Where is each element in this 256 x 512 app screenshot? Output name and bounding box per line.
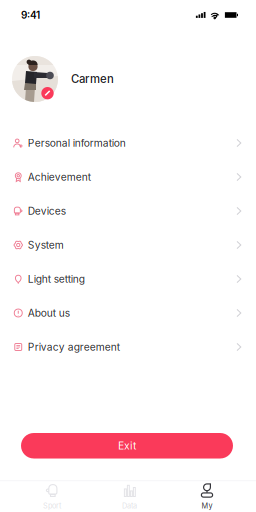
button[interactable]: Achievement bbox=[0, 160, 256, 194]
button[interactable]: About us bbox=[0, 296, 256, 330]
staticText: About us bbox=[28, 307, 70, 319]
button[interactable]: Personal information bbox=[0, 126, 256, 160]
button[interactable]: System bbox=[0, 228, 256, 262]
button[interactable]: Privacy agreement bbox=[0, 330, 256, 364]
button[interactable]: Devices bbox=[0, 194, 256, 228]
staticText: Sport bbox=[43, 501, 61, 510]
staticText: Light setting bbox=[28, 273, 85, 285]
staticText: 9:41 bbox=[21, 9, 40, 21]
staticText: Devices bbox=[28, 205, 66, 217]
button[interactable]: Light setting bbox=[0, 262, 256, 296]
button[interactable]: Data bbox=[101, 481, 157, 512]
staticText: Exit bbox=[118, 439, 136, 452]
staticText: Privacy agreement bbox=[28, 341, 120, 353]
staticText: Personal information bbox=[28, 137, 126, 149]
button[interactable]: My bbox=[179, 481, 235, 512]
staticText: Data bbox=[122, 501, 137, 510]
staticText: System bbox=[28, 239, 64, 251]
staticText: Carmen bbox=[71, 72, 114, 86]
button[interactable]: Exit bbox=[21, 433, 233, 458]
staticText: My bbox=[201, 501, 212, 510]
staticText: Achievement bbox=[28, 171, 91, 183]
button[interactable]: Sport bbox=[24, 481, 80, 512]
